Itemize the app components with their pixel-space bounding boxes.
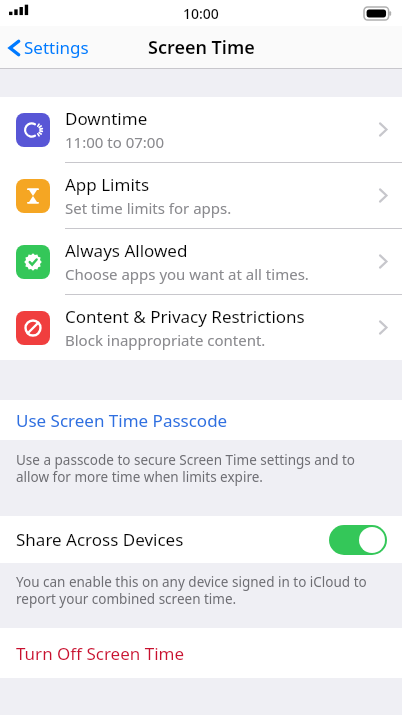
staticText: Choose apps you want at all times.: [65, 264, 309, 284]
staticText: Share Across Devices: [16, 528, 329, 551]
staticText: Use Screen Time Passcode: [16, 409, 228, 432]
staticText: Settings: [24, 36, 89, 59]
button[interactable]: Settings: [0, 32, 97, 63]
button[interactable]: Always Allowed: [0, 229, 402, 294]
staticText: Screen Time: [148, 35, 255, 60]
staticText: Always Allowed: [65, 239, 188, 262]
staticText: Turn Off Screen Time: [16, 642, 185, 665]
staticText: You can enable this on any device signed…: [16, 573, 378, 608]
staticText: 10:00: [183, 4, 219, 23]
button[interactable]: Share Across Devices: [0, 516, 402, 563]
button[interactable]: Share Across Devices toggle: [329, 525, 387, 555]
staticText: Set time limits for apps.: [65, 198, 232, 218]
staticText: Block inappropriate content.: [65, 330, 266, 350]
staticText: App Limits: [65, 173, 150, 196]
staticText: 11:00 to 07:00: [65, 132, 164, 152]
button[interactable]: App Limits: [0, 163, 402, 228]
staticText: Content & Privacy Restrictions: [65, 305, 305, 328]
staticText: Downtime: [65, 107, 148, 130]
button[interactable]: Content & Privacy Restrictions: [0, 295, 402, 360]
button[interactable]: Turn Off Screen Time: [0, 628, 402, 678]
button[interactable]: Downtime: [0, 97, 402, 162]
button[interactable]: Use Screen Time Passcode: [0, 400, 402, 440]
staticText: Use a passcode to secure Screen Time set…: [16, 451, 378, 486]
